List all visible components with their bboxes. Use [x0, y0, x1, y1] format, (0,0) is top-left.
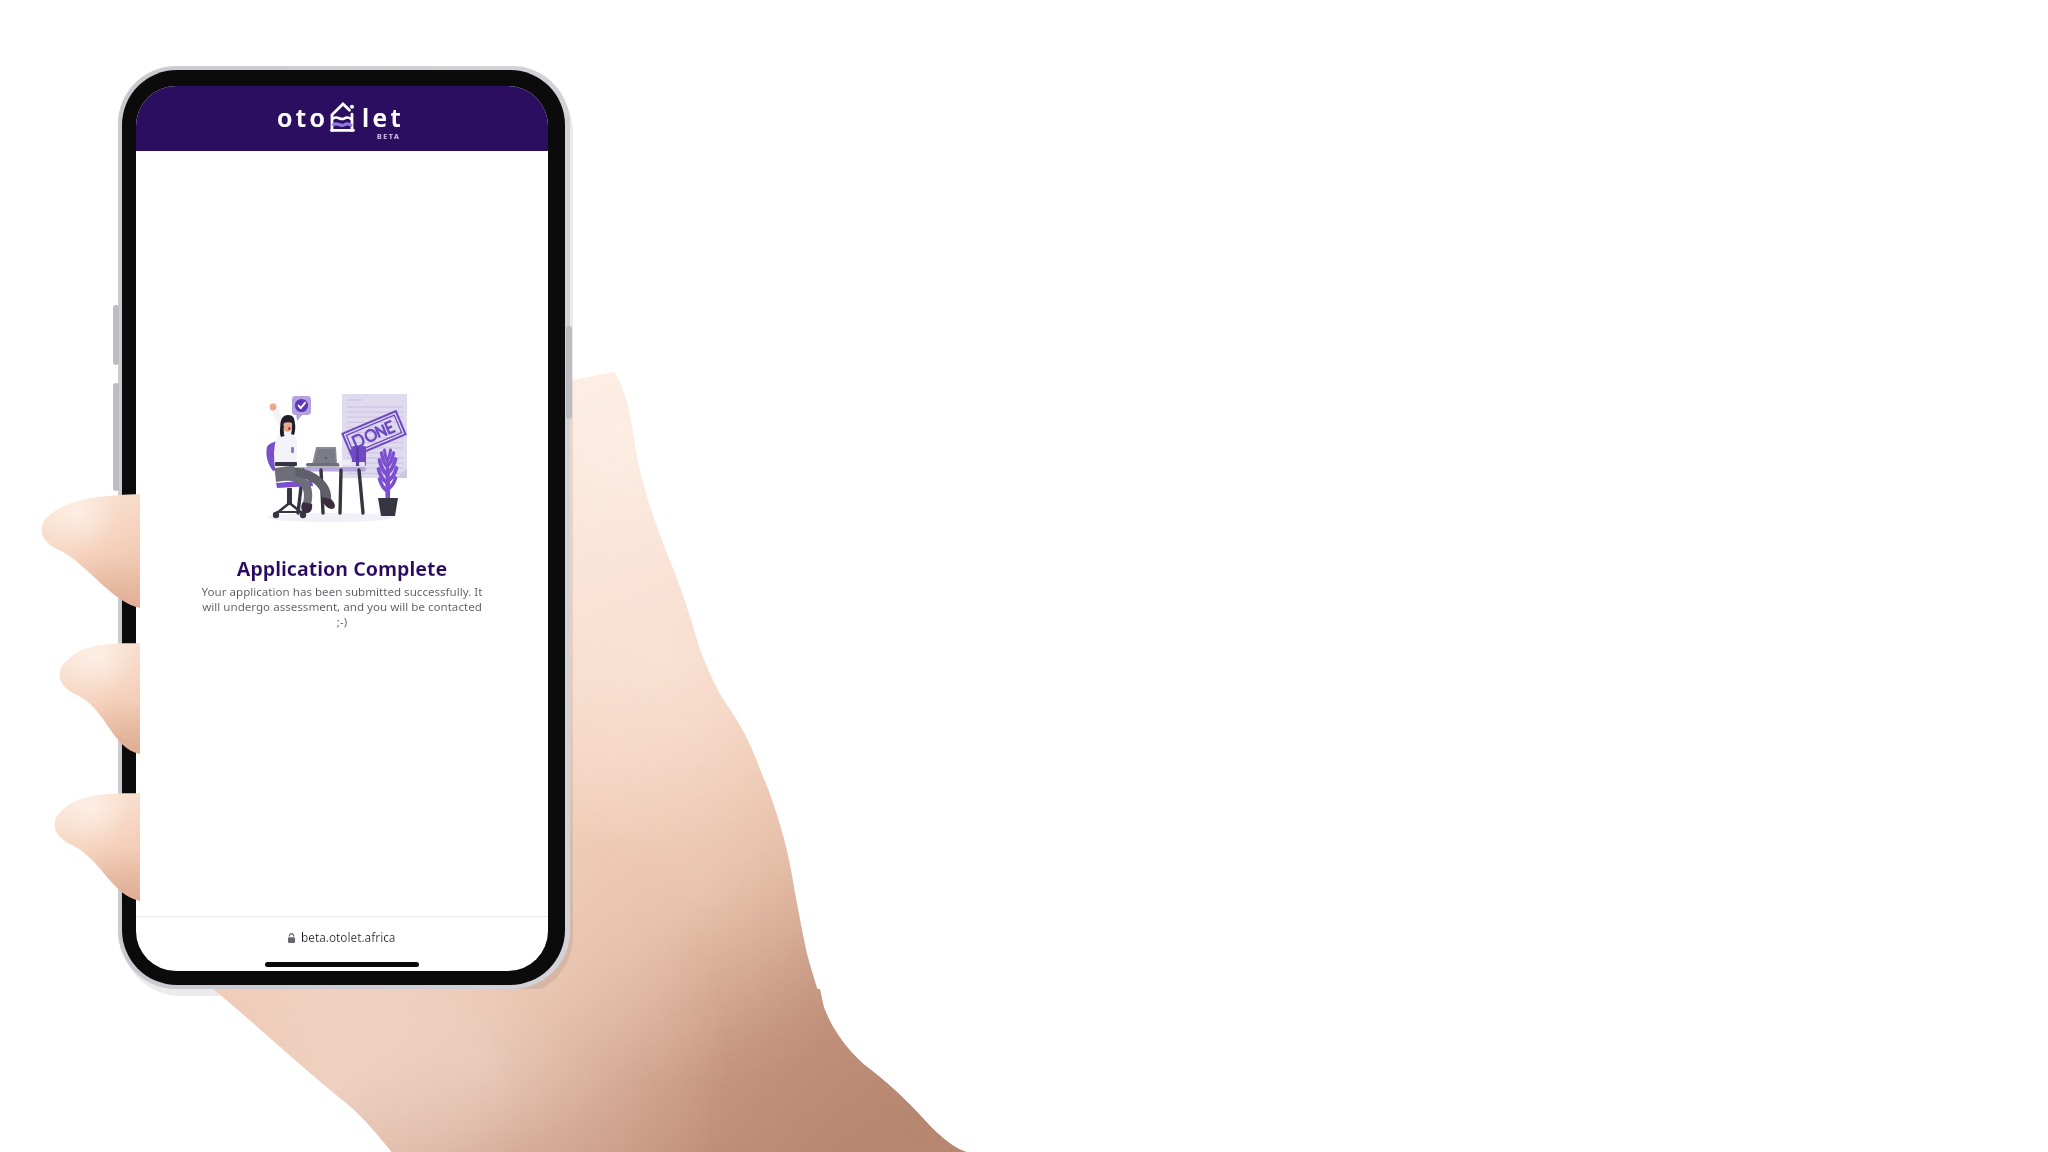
- staticText: Application Complete: [136, 555, 548, 582]
- button[interactable]: otolet beta: [136, 86, 548, 151]
- staticText: let: [362, 100, 405, 134]
- staticText: oto: [277, 100, 329, 134]
- staticText: Your application has been submitted succ…: [192, 584, 492, 630]
- staticText: beta.otolet.africa: [301, 929, 396, 945]
- staticText: BETA: [377, 132, 401, 142]
- button[interactable]: beta.otolet.africa: [136, 917, 548, 957]
